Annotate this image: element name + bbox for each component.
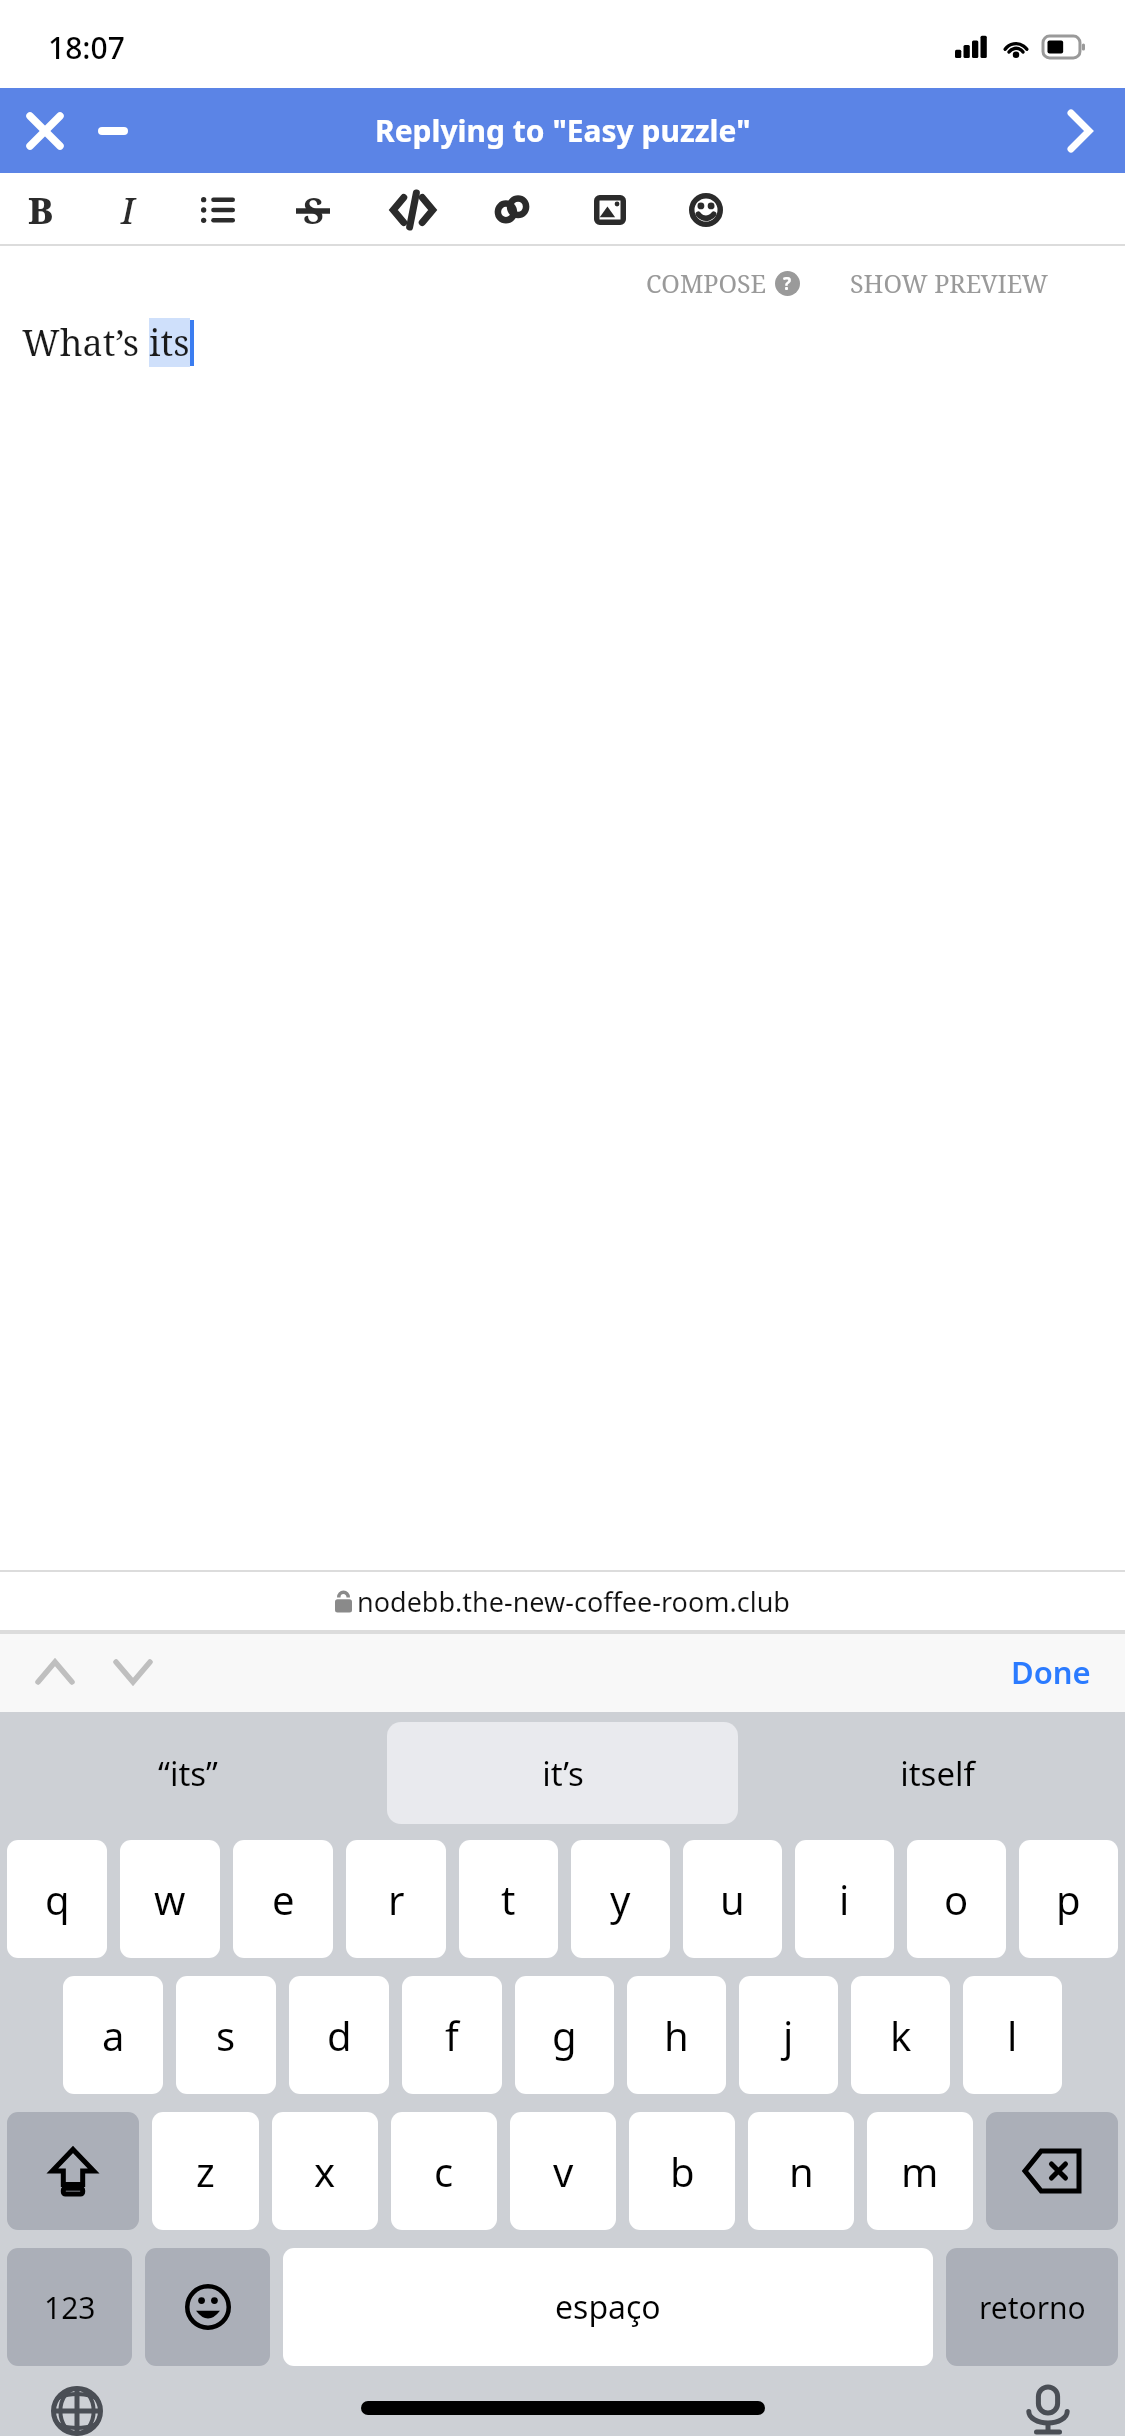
staticText: y bbox=[610, 1872, 631, 1926]
button[interactable]: i bbox=[795, 1840, 894, 1958]
button[interactable]: Code bbox=[377, 174, 449, 246]
button[interactable]: n bbox=[748, 2112, 854, 2230]
button[interactable]: Bullet list bbox=[182, 174, 254, 246]
button[interactable]: espaço bbox=[283, 2248, 933, 2366]
staticText: 123 bbox=[44, 2287, 96, 2328]
staticText: S bbox=[303, 186, 324, 235]
button[interactable]: retorno bbox=[946, 2248, 1118, 2366]
button[interactable]: Link bbox=[476, 174, 548, 246]
button[interactable]: Minimize bbox=[82, 100, 144, 162]
staticText: j bbox=[783, 2008, 794, 2062]
staticText: espaço bbox=[555, 2285, 661, 2329]
button[interactable]: a bbox=[63, 1976, 163, 2094]
staticText: f bbox=[445, 2008, 459, 2062]
staticText: itself bbox=[900, 1751, 975, 1796]
staticText: l bbox=[1007, 2008, 1018, 2062]
staticText: it’s bbox=[542, 1751, 584, 1796]
staticText: g bbox=[552, 2008, 577, 2062]
staticText: r bbox=[388, 1872, 405, 1926]
button[interactable]: z bbox=[152, 2112, 259, 2230]
button[interactable]: Backspace bbox=[986, 2112, 1118, 2230]
button[interactable]: s bbox=[176, 1976, 276, 2094]
button[interactable]: y bbox=[571, 1840, 670, 1958]
staticText: c bbox=[434, 2144, 454, 2198]
button[interactable]: it’s bbox=[387, 1722, 738, 1824]
button[interactable]: x bbox=[272, 2112, 378, 2230]
staticText: I bbox=[121, 186, 135, 235]
staticText: z bbox=[196, 2144, 215, 2198]
staticText: nodebb.the-new-coffee-room.club bbox=[357, 1583, 790, 1620]
button[interactable]: m bbox=[867, 2112, 973, 2230]
staticText: x bbox=[314, 2144, 336, 2198]
button[interactable]: q bbox=[7, 1840, 107, 1958]
button[interactable]: r bbox=[346, 1840, 446, 1958]
staticText: u bbox=[720, 1872, 745, 1926]
button[interactable]: Previous field bbox=[22, 1639, 88, 1705]
staticText: h bbox=[664, 2008, 689, 2062]
button[interactable]: “its” bbox=[12, 1722, 363, 1824]
staticText: t bbox=[501, 1872, 516, 1926]
button[interactable]: Change keyboard language bbox=[38, 2386, 116, 2436]
button[interactable]: t bbox=[459, 1840, 558, 1958]
staticText: w bbox=[154, 1872, 186, 1926]
button[interactable]: h bbox=[627, 1976, 726, 2094]
button[interactable]: Dictation bbox=[1009, 2386, 1087, 2436]
button[interactable]: b bbox=[629, 2112, 735, 2230]
button[interactable]: u bbox=[683, 1840, 782, 1958]
button[interactable]: v bbox=[510, 2112, 616, 2230]
button[interactable]: Strikethrough bbox=[277, 174, 349, 246]
button[interactable]: Italic bbox=[92, 174, 164, 246]
button[interactable]: f bbox=[402, 1976, 502, 2094]
staticText: SHOW PREVIEW bbox=[850, 266, 1049, 300]
button[interactable]: Emoji bbox=[670, 174, 742, 246]
button[interactable]: e bbox=[233, 1840, 333, 1958]
staticText: Replying to "Easy puzzle" bbox=[375, 110, 751, 151]
button[interactable]: d bbox=[289, 1976, 389, 2094]
staticText: COMPOSE bbox=[646, 266, 767, 300]
button[interactable]: w bbox=[120, 1840, 220, 1958]
staticText: ? bbox=[783, 272, 792, 295]
staticText: retorno bbox=[979, 2287, 1086, 2328]
button[interactable]: SHOW PREVIEW bbox=[844, 258, 1055, 308]
button[interactable]: j bbox=[739, 1976, 838, 2094]
staticText: 18:07 bbox=[48, 27, 125, 68]
button[interactable]: c bbox=[391, 2112, 497, 2230]
staticText: b bbox=[670, 2144, 695, 2198]
button[interactable]: Close bbox=[14, 100, 76, 162]
staticText: a bbox=[102, 2008, 125, 2062]
button[interactable]: COMPOSE bbox=[640, 258, 806, 308]
staticText: What’s bbox=[22, 318, 149, 367]
staticText: p bbox=[1056, 1872, 1081, 1926]
button[interactable]: Done bbox=[1001, 1643, 1101, 1701]
staticText: m bbox=[901, 2144, 939, 2198]
button[interactable]: Shift bbox=[7, 2112, 139, 2230]
button[interactable]: 123 bbox=[7, 2248, 132, 2366]
button[interactable]: Submit reply bbox=[1049, 100, 1111, 162]
button[interactable]: l bbox=[963, 1976, 1062, 2094]
staticText: e bbox=[272, 1872, 295, 1926]
staticText: B bbox=[28, 186, 54, 235]
staticText: i bbox=[839, 1872, 850, 1926]
button[interactable]: itself bbox=[762, 1722, 1113, 1824]
staticText: d bbox=[327, 2008, 352, 2062]
staticText: its bbox=[149, 318, 190, 367]
button[interactable]: o bbox=[907, 1840, 1006, 1958]
staticText: n bbox=[789, 2144, 814, 2198]
staticText: Done bbox=[1011, 1651, 1091, 1693]
staticText: v bbox=[553, 2144, 574, 2198]
staticText: s bbox=[216, 2008, 236, 2062]
staticText: q bbox=[45, 1872, 70, 1926]
button[interactable]: k bbox=[851, 1976, 950, 2094]
staticText: o bbox=[944, 1872, 969, 1926]
button[interactable]: Emoji keyboard bbox=[145, 2248, 270, 2366]
staticText: “its” bbox=[158, 1751, 218, 1796]
button[interactable]: Bold bbox=[5, 174, 77, 246]
button[interactable]: p bbox=[1019, 1840, 1118, 1958]
button[interactable]: Next field bbox=[100, 1639, 166, 1705]
button[interactable]: g bbox=[515, 1976, 614, 2094]
button[interactable]: Image bbox=[574, 174, 646, 246]
staticText: k bbox=[890, 2008, 912, 2062]
